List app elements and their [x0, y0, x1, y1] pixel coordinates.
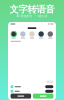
button[interactable]: Voice — [10, 31, 17, 39]
button[interactable] — [8, 84, 56, 89]
button[interactable]: Voice — [38, 31, 44, 39]
staticText: AI 智能配音 · 一键生成 — [16, 14, 47, 18]
button[interactable]: Voice — [29, 31, 35, 39]
button[interactable] — [8, 89, 56, 94]
button[interactable] — [11, 94, 31, 99]
button[interactable]: Voice — [47, 31, 54, 39]
staticText: 文字转语音 — [9, 4, 54, 15]
button[interactable] — [33, 94, 53, 99]
button[interactable]: Voice — [20, 31, 26, 39]
